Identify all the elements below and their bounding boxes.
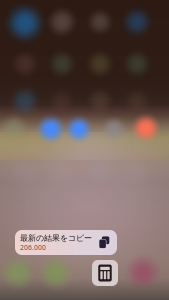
staticText: 206.000: [20, 243, 46, 252]
button[interactable]: 最新の結果をコピー: [15, 230, 117, 255]
button[interactable]: Calculator: [92, 260, 118, 286]
staticText: 最新の結果をコピー: [20, 233, 92, 243]
